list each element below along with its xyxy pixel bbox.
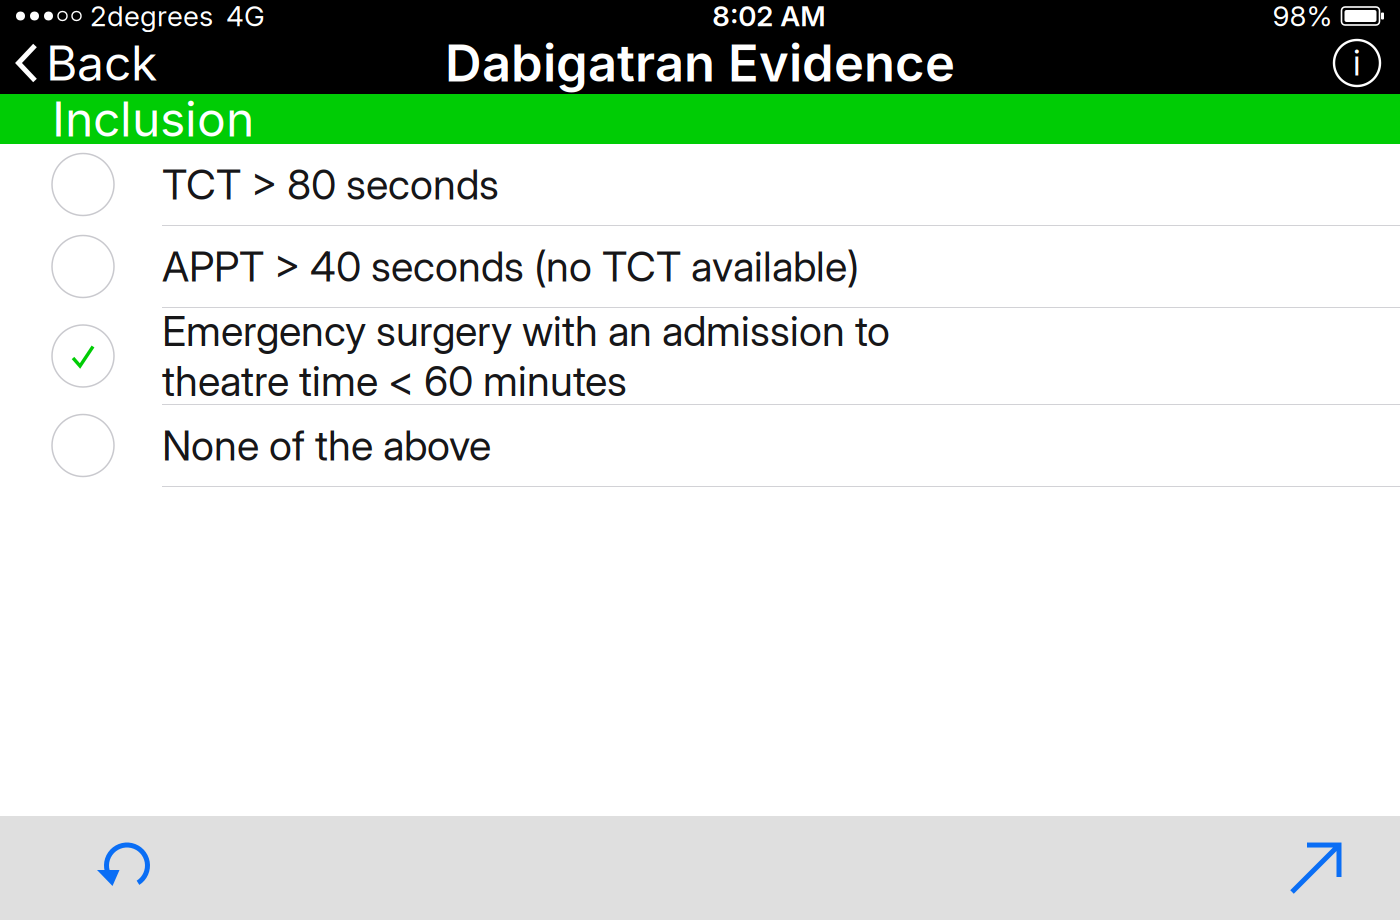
button[interactable]: Emergency surgery with an admission to t… — [0, 308, 1400, 405]
staticText: 8:02 AM — [712, 0, 825, 33]
staticText: Inclusion — [52, 90, 254, 148]
staticText: 2degrees — [90, 0, 213, 33]
button[interactable]: Next — [1246, 816, 1400, 920]
button[interactable]: Undo — [0, 816, 198, 920]
button[interactable]: Information — [1314, 32, 1400, 94]
button[interactable]: Back — [0, 32, 171, 94]
staticText: None of the above — [162, 420, 491, 470]
staticText: 4G — [226, 0, 265, 33]
staticText: APPT > 40 seconds (no TCT available) — [162, 241, 859, 291]
button[interactable]: None of the above — [0, 405, 1400, 487]
staticText: Dabigatran Evidence — [445, 32, 955, 94]
staticText: Back — [46, 34, 157, 92]
button[interactable]: TCT > 80 seconds — [0, 144, 1400, 226]
button[interactable]: APPT > 40 seconds (no TCT available) — [0, 226, 1400, 308]
staticText: i — [1353, 42, 1361, 84]
staticText: TCT > 80 seconds — [162, 159, 499, 209]
staticText: Emergency surgery with an admission to t… — [162, 306, 890, 406]
staticText: 98% — [1272, 0, 1332, 33]
